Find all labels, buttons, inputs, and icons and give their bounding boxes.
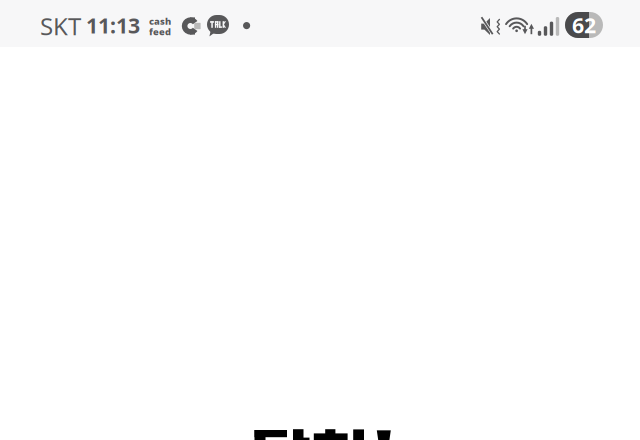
staticText: feed [149, 25, 171, 38]
button[interactable]: Silent, Wi-Fi, signal, battery 62 percen… [470, 0, 610, 47]
staticText: 11:13 [86, 11, 140, 39]
staticText: SKT [40, 10, 81, 42]
button[interactable]: Notifications, SKT, 11:13 [30, 0, 270, 47]
staticText: 62 [572, 11, 596, 39]
staticText: cash [149, 15, 171, 27]
